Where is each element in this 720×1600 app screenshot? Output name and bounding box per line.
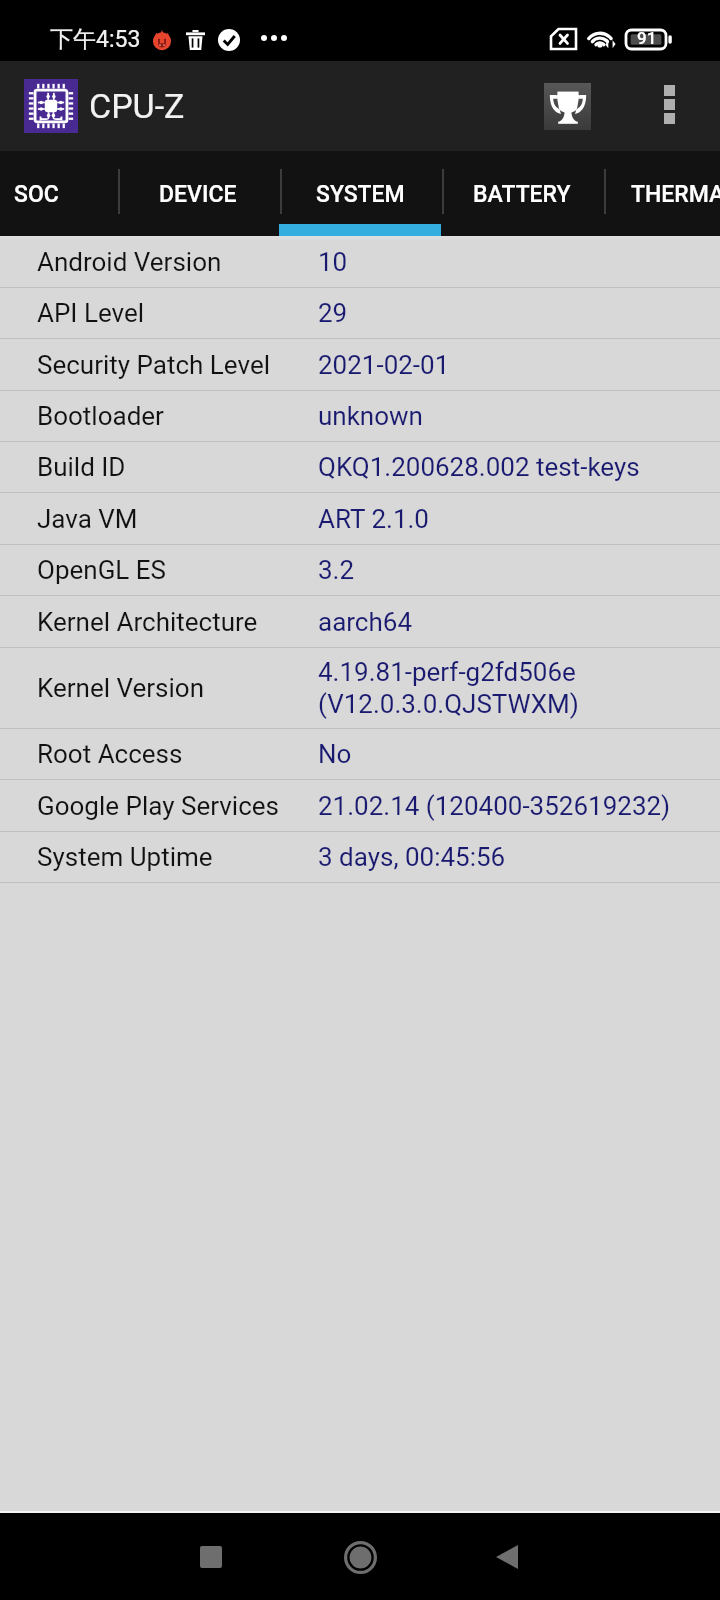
staticText: Kernel Version (37, 673, 318, 703)
button[interactable]: More options (645, 82, 693, 130)
button[interactable]: API Level (0, 288, 720, 339)
staticText: Android Version (37, 247, 318, 277)
staticText: Google Play Services (37, 791, 318, 821)
button[interactable]: Recents (171, 1517, 251, 1597)
staticText: 3.2 (318, 555, 355, 585)
staticText: ART 2.1.0 (318, 504, 429, 534)
staticText: OpenGL ES (37, 555, 318, 585)
button[interactable]: Build ID (0, 442, 720, 493)
staticText: System Uptime (37, 842, 318, 872)
staticText: Bootloader (37, 401, 318, 431)
button[interactable]: Android Version (0, 237, 720, 288)
button[interactable]: THERMAL (603, 151, 720, 236)
button[interactable]: Kernel Architecture (0, 596, 720, 648)
button[interactable]: Home (320, 1517, 400, 1597)
staticText: 91 (637, 28, 657, 48)
staticText: DEVICE (159, 181, 237, 208)
staticText: SYSTEM (316, 181, 405, 208)
button[interactable]: Back (467, 1517, 547, 1597)
button[interactable]: Google Play Services (0, 780, 720, 832)
button[interactable]: Root Access (0, 729, 720, 780)
staticText: Build ID (37, 452, 318, 482)
staticText: 10 (318, 247, 348, 277)
button[interactable]: OpenGL ES (0, 545, 720, 596)
staticText: BATTERY (473, 181, 571, 208)
staticText: Root Access (37, 739, 318, 769)
button[interactable]: DEVICE (117, 151, 279, 236)
staticText: 下午4:53 (50, 25, 141, 54)
staticText: 4.19.81-perf-g2fd506e (V12.0.3.0.QJSTWXM… (318, 657, 579, 720)
button[interactable]: Kernel Version (0, 648, 720, 729)
button[interactable]: Bootloader (0, 391, 720, 442)
staticText: Kernel Architecture (37, 607, 318, 637)
staticText: SOC (14, 181, 59, 208)
staticText: No (318, 739, 352, 769)
button[interactable]: Benchmark (544, 83, 591, 130)
button[interactable]: SYSTEM (279, 151, 441, 236)
staticText: CPU-Z (89, 86, 185, 126)
button[interactable]: SOC (0, 151, 117, 236)
button[interactable]: Java VM (0, 493, 720, 545)
staticText: Java VM (37, 504, 318, 534)
staticText: 21.02.14 (120400-352619232) (318, 791, 671, 821)
staticText: API Level (37, 298, 318, 328)
staticText: THERMAL (631, 181, 720, 208)
staticText: 29 (318, 298, 348, 328)
button[interactable]: Security Patch Level (0, 339, 720, 391)
staticText: 2021-02-01 (318, 350, 450, 380)
button[interactable]: BATTERY (441, 151, 603, 236)
staticText: unknown (318, 401, 423, 431)
staticText: 3 days, 00:45:56 (318, 842, 506, 872)
staticText: Security Patch Level (37, 350, 318, 380)
button[interactable]: System Uptime (0, 832, 720, 883)
staticText: aarch64 (318, 607, 413, 637)
staticText: QKQ1.200628.002 test-keys (318, 452, 640, 482)
